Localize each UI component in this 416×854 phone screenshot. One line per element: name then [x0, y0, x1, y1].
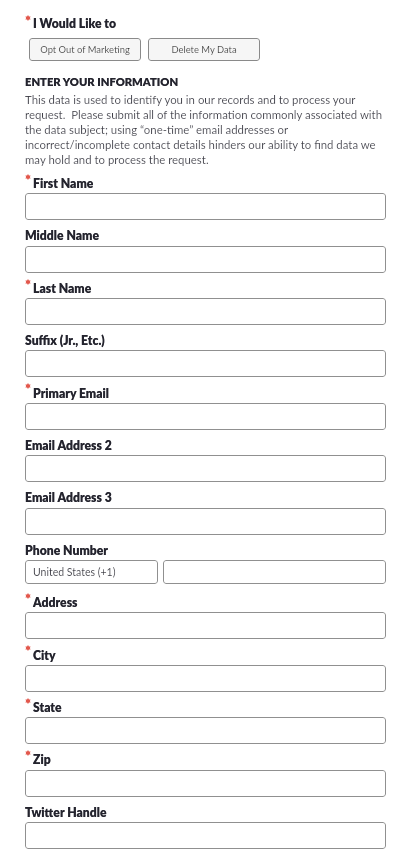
staticText: Phone Number: [25, 543, 108, 558]
staticText: State: [33, 700, 62, 715]
button[interactable]: [25, 822, 386, 849]
staticText: Address: [33, 595, 78, 610]
button[interactable]: [25, 298, 386, 325]
staticText: Email Address 3: [25, 490, 112, 505]
button[interactable]: [163, 560, 386, 584]
staticText: Email Address 3: [25, 490, 112, 505]
staticText: This data is used to identify you in our…: [25, 93, 388, 167]
staticText: Last Name: [33, 281, 92, 296]
button[interactable]: [25, 665, 386, 692]
staticText: Last Name: [33, 281, 92, 296]
button[interactable]: [25, 612, 386, 639]
staticText: Email Address 2: [25, 438, 112, 453]
button[interactable]: Delete My Data: [148, 38, 260, 61]
staticText: I Would Like to: [33, 16, 117, 31]
staticText: Phone Number: [25, 543, 108, 558]
button[interactable]: [25, 246, 386, 273]
staticText: Email Address 2: [25, 438, 112, 453]
button[interactable]: [25, 403, 386, 430]
button[interactable]: [25, 455, 386, 482]
staticText: I Would Like to: [33, 16, 117, 31]
button[interactable]: [25, 717, 386, 744]
button[interactable]: [25, 508, 386, 535]
staticText: Twitter Handle: [25, 805, 107, 820]
button[interactable]: [25, 350, 386, 377]
staticText: City: [33, 648, 56, 663]
staticText: Primary Email: [33, 386, 109, 401]
staticText: Delete My Data: [171, 44, 237, 55]
staticText: Address: [33, 595, 78, 610]
staticText: City: [33, 648, 56, 663]
staticText: Middle Name: [25, 228, 100, 243]
staticText: Opt Out of Marketing: [40, 44, 130, 55]
staticText: First Name: [33, 176, 94, 191]
staticText: Zip: [33, 752, 51, 767]
button[interactable]: [25, 193, 386, 220]
staticText: Primary Email: [33, 386, 109, 401]
staticText: United States (+1): [33, 566, 116, 579]
staticText: ENTER YOUR INFORMATION: [25, 75, 179, 88]
staticText: ENTER YOUR INFORMATION: [25, 75, 179, 88]
staticText: Twitter Handle: [25, 805, 107, 820]
button[interactable]: Opt Out of Marketing: [29, 38, 141, 61]
staticText: Middle Name: [25, 228, 100, 243]
button[interactable]: United States (+1): [25, 560, 158, 584]
staticText: Zip: [33, 752, 51, 767]
staticText: Suffix (Jr., Etc.): [25, 333, 105, 348]
staticText: First Name: [33, 176, 94, 191]
staticText: Suffix (Jr., Etc.): [25, 333, 105, 348]
staticText: State: [33, 700, 62, 715]
button[interactable]: [25, 770, 386, 797]
